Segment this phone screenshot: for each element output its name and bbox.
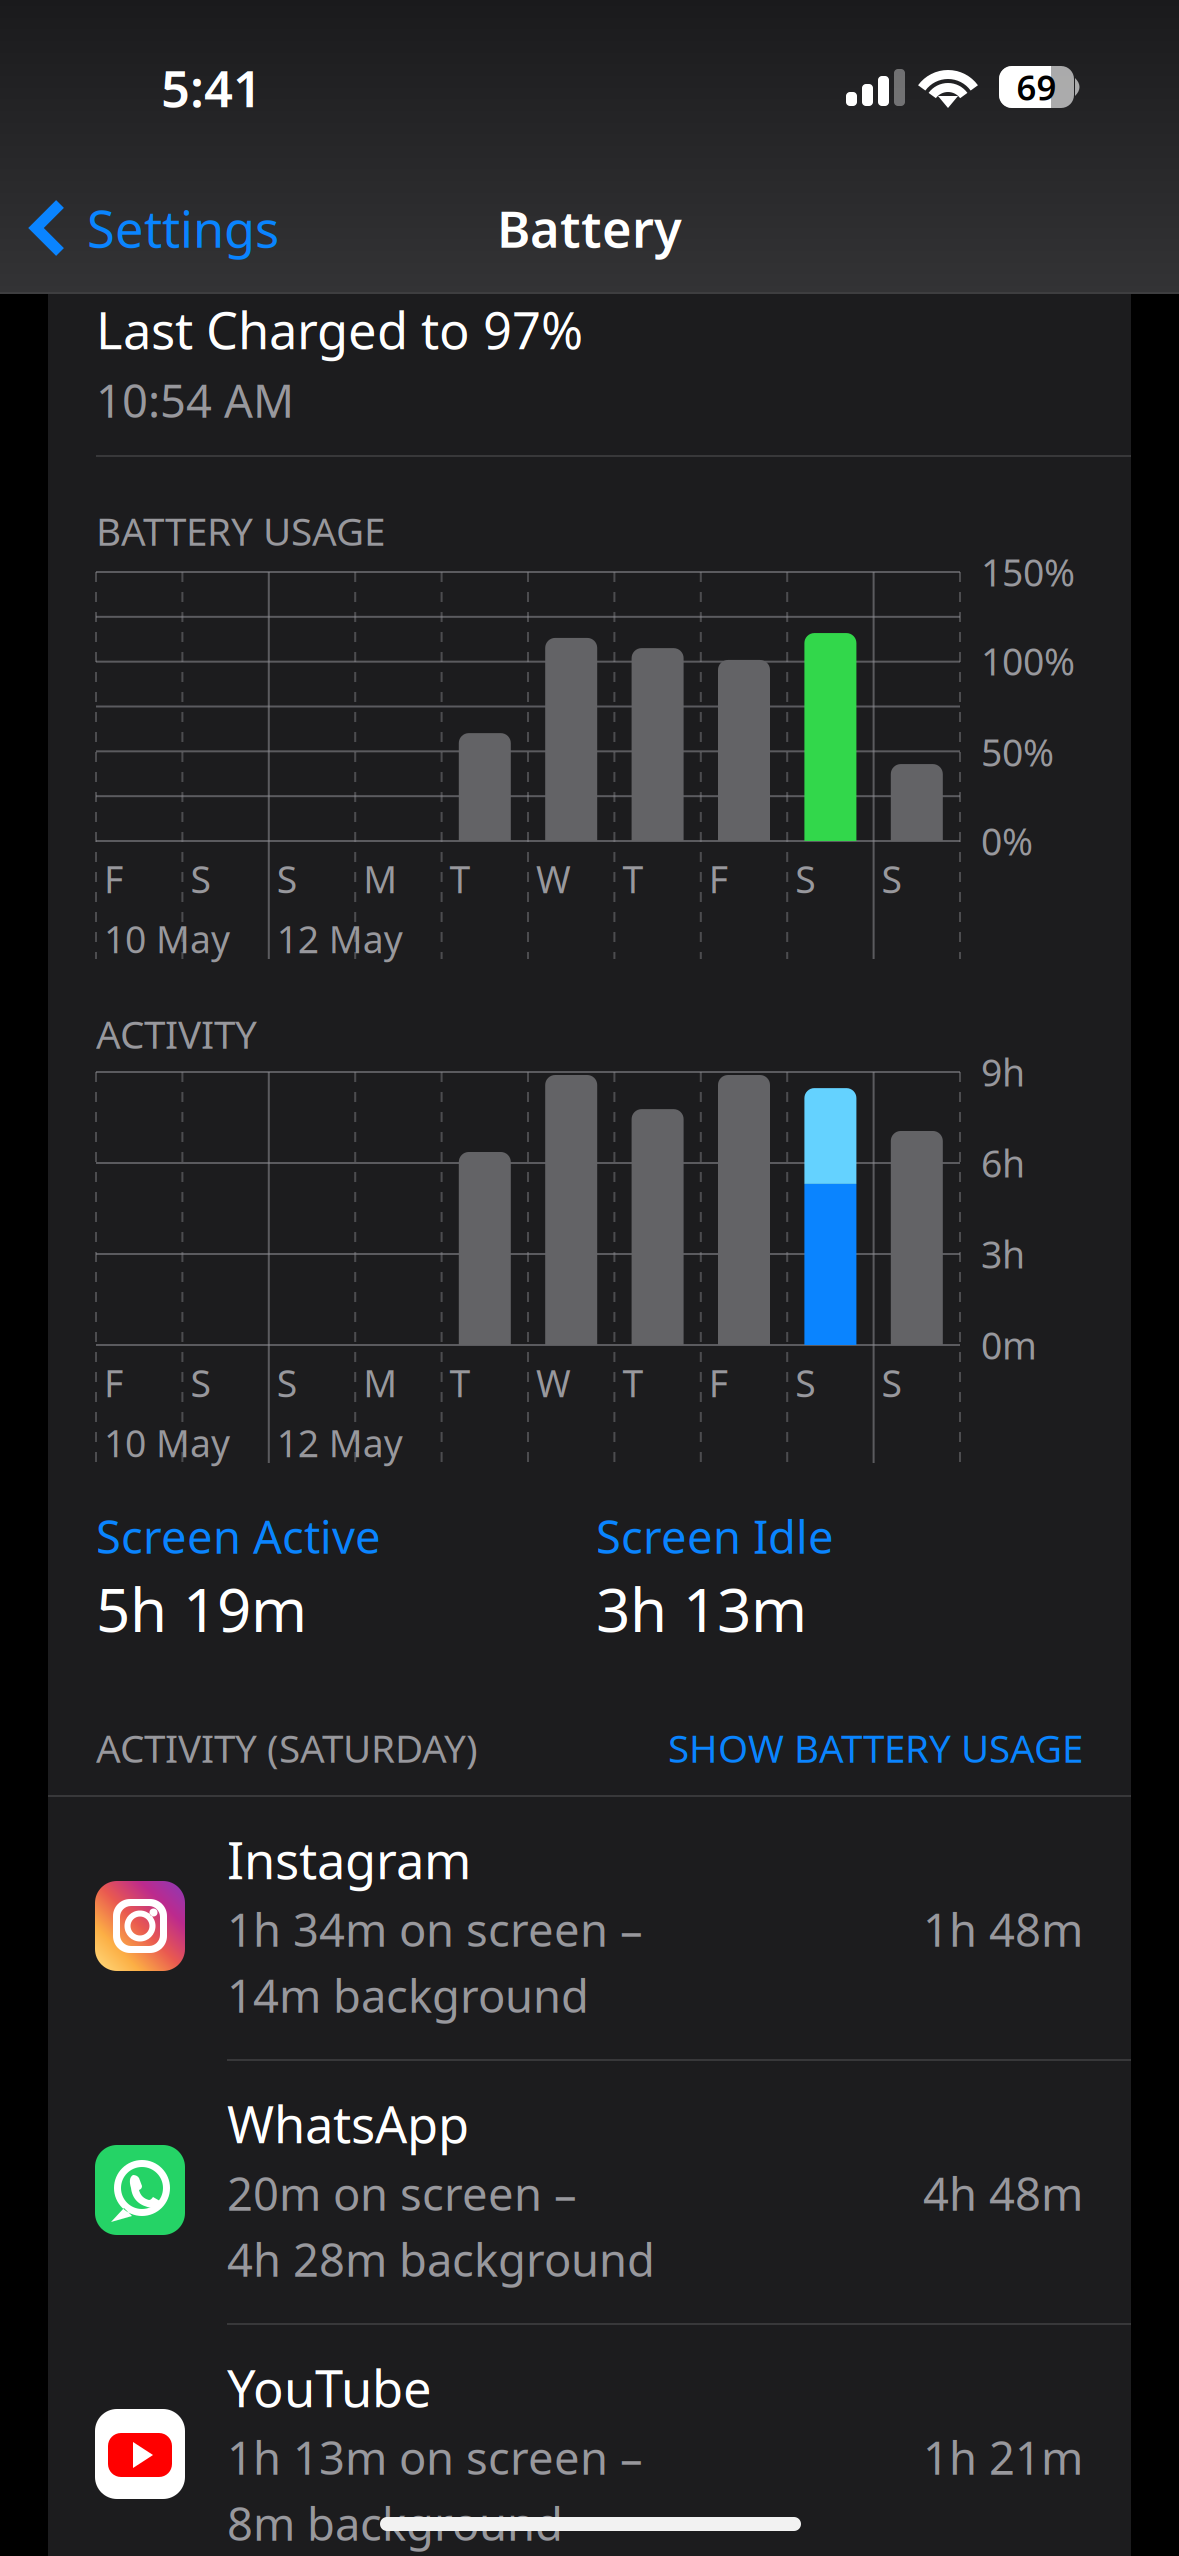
staticText: S: [882, 854, 902, 904]
staticText: S: [190, 1358, 210, 1408]
staticText: M: [363, 854, 397, 904]
staticText: M: [363, 1358, 397, 1408]
staticText: T: [622, 1358, 643, 1408]
staticText: 9h: [981, 1047, 1025, 1097]
staticText: S: [277, 854, 297, 904]
staticText: 20m on screen –: [227, 2163, 577, 2223]
button[interactable]: WhatsApp: [0, 0, 1179, 2556]
staticText: F: [709, 854, 728, 904]
staticText: 14m background: [227, 1965, 589, 2025]
button[interactable]: Settings: [0, 182, 400, 274]
staticText: 0%: [981, 816, 1033, 866]
staticText: 5h 19m: [96, 1569, 307, 1649]
staticText: ACTIVITY: [96, 1008, 257, 1059]
staticText: F: [104, 854, 123, 904]
staticText: T: [450, 1358, 471, 1408]
staticText: 0m: [981, 1320, 1037, 1370]
staticText: 8m background: [227, 2493, 563, 2553]
staticText: F: [104, 1358, 123, 1408]
staticText: 4h 48m: [923, 2163, 1083, 2223]
staticText: Last Charged to 97%: [96, 296, 583, 363]
staticText: Instagram: [227, 1826, 471, 1893]
staticText: 10 May: [104, 1418, 230, 1468]
staticText: Screen Idle: [596, 1506, 834, 1566]
staticText: Settings: [87, 194, 279, 262]
staticText: T: [622, 854, 643, 904]
staticText: W: [536, 1358, 571, 1408]
staticText: S: [795, 854, 815, 904]
staticText: 1h 48m: [923, 1899, 1083, 1959]
staticText: 12 May: [277, 914, 403, 964]
staticText: 5:41: [161, 54, 262, 121]
button[interactable]: Instagram: [0, 0, 1179, 2556]
staticText: 100%: [981, 636, 1075, 686]
staticText: 1h 21m: [923, 2427, 1083, 2487]
staticText: BATTERY USAGE: [96, 505, 385, 556]
staticText: T: [450, 854, 471, 904]
staticText: 12 May: [277, 1418, 403, 1468]
staticText: S: [190, 854, 210, 904]
staticText: SHOW BATTERY USAGE: [668, 1722, 1083, 1773]
staticText: 10:54 AM: [96, 370, 294, 430]
staticText: S: [277, 1358, 297, 1408]
button[interactable]: YouTube: [0, 0, 1179, 2556]
button[interactable]: SHOW BATTERY USAGE: [48, 1722, 1083, 1773]
staticText: 10 May: [104, 914, 230, 964]
staticText: Screen Active: [96, 1506, 381, 1566]
staticText: 3h 13m: [596, 1569, 807, 1649]
staticText: S: [795, 1358, 815, 1408]
staticText: 4h 28m background: [227, 2229, 655, 2289]
staticText: ACTIVITY (SATURDAY): [96, 1722, 478, 1773]
staticText: S: [882, 1358, 902, 1408]
staticText: 6h: [981, 1138, 1025, 1188]
staticText: 50%: [981, 727, 1054, 777]
staticText: WhatsApp: [227, 2090, 469, 2157]
staticText: 1h 13m on screen –: [227, 2427, 643, 2487]
staticText: Battery: [497, 194, 682, 262]
staticText: YouTube: [227, 2354, 432, 2421]
staticText: 69: [1016, 64, 1056, 110]
staticText: 1h 34m on screen –: [227, 1899, 643, 1959]
staticText: 3h: [981, 1229, 1025, 1279]
staticText: W: [536, 854, 571, 904]
staticText: 150%: [981, 547, 1075, 597]
staticText: F: [709, 1358, 728, 1408]
